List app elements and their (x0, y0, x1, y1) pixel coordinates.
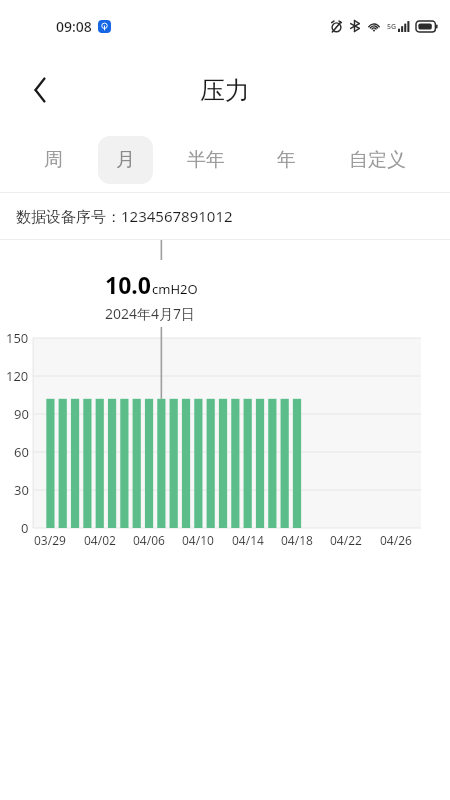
staticText: 150 (6, 329, 29, 347)
staticText: 月 (116, 148, 135, 172)
staticText: 压力 (200, 75, 250, 106)
staticText: 04/26 (380, 532, 412, 548)
staticText: cmH2O (152, 280, 198, 298)
staticText: 90 (14, 405, 29, 423)
staticText: 半年 (187, 148, 225, 172)
staticText: 2024年4月7日 (105, 304, 196, 323)
staticText: 60 (14, 443, 29, 461)
button[interactable]: 月 (98, 136, 153, 184)
staticText: 120 (6, 367, 29, 385)
button[interactable]: 10.0 (93, 260, 233, 327)
staticText: 年 (277, 148, 296, 172)
staticText: 自定义 (349, 148, 406, 172)
staticText: 0 (21, 519, 29, 537)
staticText: 30 (14, 481, 29, 499)
staticText: 09:08 (56, 17, 92, 36)
button[interactable]: 自定义 (331, 136, 424, 184)
staticText: 周 (44, 148, 63, 172)
staticText: 10.0 (105, 269, 151, 300)
staticText: 04/14 (232, 532, 264, 548)
button[interactable]: 返回 (16, 66, 64, 114)
staticText: 03/29 (34, 532, 66, 548)
staticText: 04/10 (182, 532, 214, 548)
staticText: 04/06 (133, 532, 165, 548)
button[interactable]: 半年 (169, 136, 243, 184)
staticText: 04/02 (84, 532, 116, 548)
staticText: 04/22 (330, 532, 362, 548)
button[interactable]: 周 (26, 136, 81, 184)
staticText: 数据设备序号：1234567891012 (16, 206, 233, 226)
button[interactable]: 年 (259, 136, 314, 184)
staticText: 04/18 (281, 532, 313, 548)
staticText: 5G (387, 22, 397, 32)
